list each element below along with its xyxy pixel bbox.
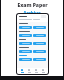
button[interactable]: Open paper [19,58,32,61]
button[interactable]: Saved [33,68,39,74]
button[interactable]: Open paper [19,34,32,37]
button[interactable]: Profile [40,68,46,74]
button[interactable]: Open paper [33,58,46,61]
button[interactable]: Open paper [33,34,46,37]
button[interactable]: Open paper [19,26,32,29]
button[interactable]: Open paper [33,42,46,45]
button[interactable]: Open paper [19,42,32,45]
staticText: Archive [23,10,41,16]
button[interactable]: Papers [26,68,32,74]
button[interactable]: Open paper [33,26,46,29]
staticText: Exam Paper [17,2,48,9]
button[interactable]: Open paper [33,50,46,53]
button[interactable]: Home [19,68,25,74]
button[interactable]: Open paper [19,50,32,53]
